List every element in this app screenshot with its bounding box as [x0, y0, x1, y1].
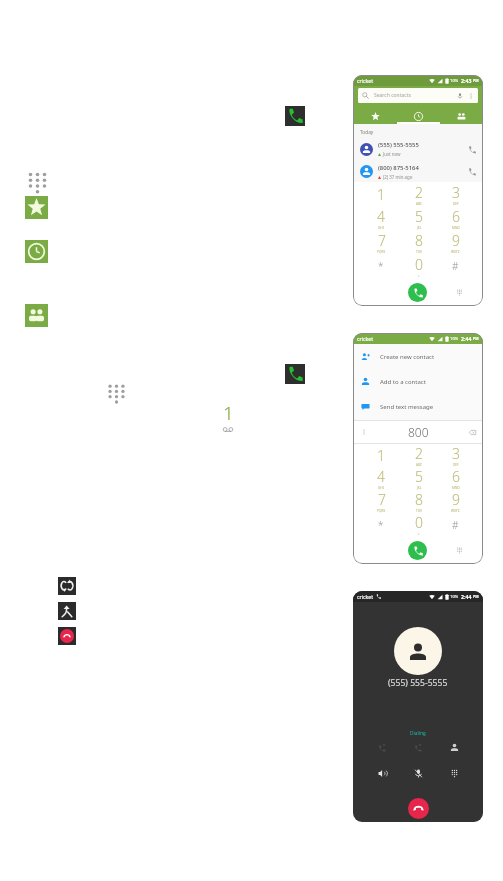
button[interactable]: Hold: [364, 740, 400, 755]
staticText: PM: [472, 78, 479, 83]
button[interactable]: Swap calls: [400, 740, 436, 755]
button[interactable]: Call: [408, 283, 427, 302]
staticText: Create new contact: [380, 353, 435, 361]
staticText: cricket: [357, 77, 374, 84]
staticText: 4: [377, 467, 385, 486]
button[interactable]: 1: [362, 444, 400, 467]
staticText: 800: [408, 424, 429, 440]
button[interactable]: Swap calls: [58, 577, 76, 595]
staticText: 6: [452, 207, 460, 226]
staticText: DEF: [453, 202, 459, 206]
button[interactable]: Dialpad: [105, 382, 128, 405]
staticText: 0: [415, 513, 423, 532]
staticText: 9: [452, 231, 460, 250]
button[interactable]: 8: [400, 230, 437, 254]
button[interactable]: 0: [400, 513, 437, 536]
button[interactable]: Create new contact: [353, 344, 483, 369]
button[interactable]: Hide keypad: [456, 547, 463, 554]
button[interactable]: 6: [437, 206, 474, 230]
button[interactable]: Merge calls: [58, 602, 76, 620]
staticText: +: [418, 274, 420, 278]
button[interactable]: 9: [437, 230, 474, 254]
button[interactable]: Send text message: [353, 394, 483, 419]
staticText: (555) 555-5555: [378, 141, 419, 149]
button[interactable]: Hide keypad: [456, 289, 463, 296]
staticText: WXYZ: [451, 250, 460, 254]
staticText: PQRS: [377, 250, 386, 254]
button[interactable]: (555) 555-5555: [353, 137, 483, 161]
staticText: 5: [415, 207, 423, 226]
button[interactable]: Call: [408, 541, 427, 560]
button[interactable]: 5: [400, 206, 437, 230]
staticText: 7: [378, 490, 386, 509]
button[interactable]: #: [437, 513, 474, 536]
staticText: *: [378, 259, 384, 273]
button[interactable]: Phone app: [285, 106, 305, 126]
staticText: 1: [377, 185, 385, 204]
staticText: 4: [377, 207, 385, 226]
button[interactable]: 3: [437, 182, 474, 206]
button[interactable]: 1: [362, 182, 400, 206]
button[interactable]: 5: [400, 467, 437, 490]
button[interactable]: 3: [437, 444, 474, 467]
button[interactable]: Recents: [25, 240, 48, 263]
button[interactable]: (800) 875-5164: [353, 161, 483, 182]
staticText: 8: [415, 231, 423, 250]
button[interactable]: Favorites: [25, 196, 48, 219]
button[interactable]: 4: [362, 467, 400, 490]
staticText: PQRS: [377, 509, 386, 513]
button[interactable]: More options: [360, 428, 368, 436]
staticText: MNO: [452, 226, 460, 230]
staticText: cricket: [357, 335, 374, 342]
staticText: 2: [415, 444, 423, 463]
button[interactable]: Phone app: [285, 364, 305, 384]
button[interactable]: Recents: [397, 104, 440, 124]
staticText: GHI: [378, 486, 384, 490]
button[interactable]: 8: [400, 490, 437, 513]
button[interactable]: 6: [437, 467, 474, 490]
button[interactable]: Add call: [436, 740, 472, 755]
button[interactable]: Backspace: [468, 428, 477, 437]
staticText: 9: [452, 490, 460, 509]
button[interactable]: Favorites: [353, 104, 397, 124]
button[interactable]: 2: [400, 182, 437, 206]
button[interactable]: 4: [362, 206, 400, 230]
staticText: JKL: [417, 486, 422, 490]
button[interactable]: End call: [408, 798, 429, 819]
button[interactable]: 7: [362, 230, 400, 254]
button[interactable]: *: [362, 513, 400, 536]
button[interactable]: 0: [400, 254, 437, 278]
staticText: #: [452, 518, 459, 532]
button[interactable]: Call back: [466, 144, 477, 155]
staticText: 10%: [450, 336, 459, 342]
button[interactable]: Keypad: [436, 766, 472, 781]
staticText: 2:44: [461, 593, 472, 600]
staticText: 5: [415, 467, 423, 486]
staticText: 0: [415, 255, 423, 274]
button[interactable]: Contacts: [440, 104, 483, 124]
staticText: JKL: [417, 226, 422, 230]
staticText: Send text message: [380, 403, 434, 411]
button[interactable]: 7: [362, 490, 400, 513]
button[interactable]: Call back: [466, 166, 477, 177]
button[interactable]: #: [437, 254, 474, 278]
staticText: 1: [223, 400, 234, 426]
button[interactable]: Contacts: [25, 304, 48, 327]
button[interactable]: Speaker: [364, 766, 400, 781]
button[interactable]: Dialpad: [25, 170, 50, 195]
staticText: 3: [452, 444, 460, 463]
button[interactable]: Mute: [400, 766, 436, 781]
button[interactable]: End call: [58, 627, 76, 645]
button[interactable]: 2: [400, 444, 437, 467]
staticText: TUV: [416, 250, 423, 254]
staticText: 1: [377, 446, 385, 465]
staticText: 3: [452, 183, 460, 202]
staticText: Today: [360, 129, 374, 136]
staticText: 2:44: [461, 335, 472, 342]
button[interactable]: Add to a contact: [353, 369, 483, 394]
button[interactable]: 9: [437, 490, 474, 513]
button[interactable]: Search contacts: [358, 88, 478, 103]
staticText: 8: [415, 490, 423, 509]
button[interactable]: *: [362, 254, 400, 278]
staticText: MNO: [452, 486, 460, 490]
